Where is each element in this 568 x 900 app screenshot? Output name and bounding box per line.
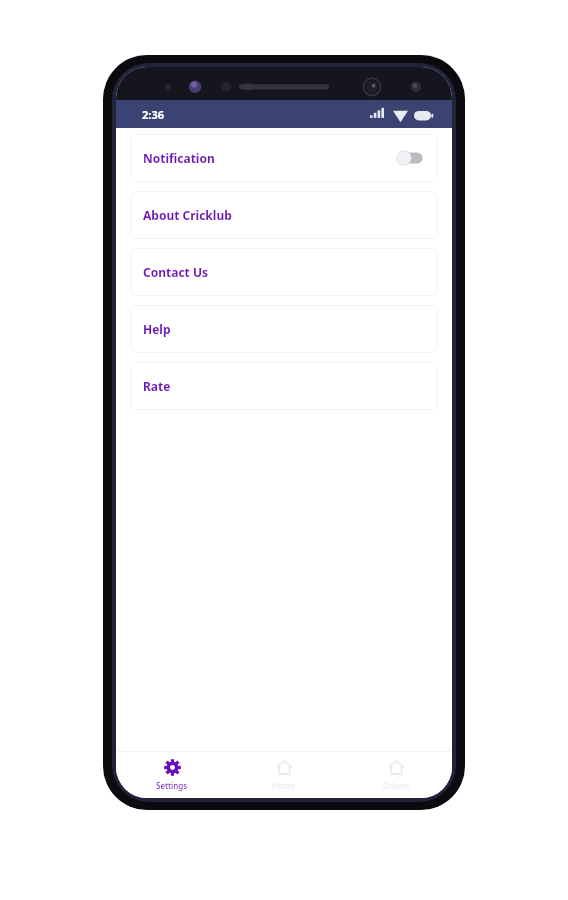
staticText: Home xyxy=(272,780,296,791)
button[interactable]: Settings xyxy=(116,752,228,798)
staticText: Rate xyxy=(143,378,171,394)
button[interactable]: Toggle notifications xyxy=(395,149,425,167)
staticText: Contact Us xyxy=(143,264,209,280)
staticText: Help xyxy=(143,321,171,337)
button[interactable]: Help xyxy=(130,305,438,353)
staticText: Settings xyxy=(156,780,188,791)
button[interactable]: Rate xyxy=(130,362,438,410)
button[interactable]: Others xyxy=(340,752,452,798)
staticText: 2:36 xyxy=(142,107,164,122)
staticText: About Cricklub xyxy=(143,207,232,223)
button[interactable]: About Cricklub xyxy=(130,191,438,239)
staticText: Notification xyxy=(143,150,215,166)
staticText: Others xyxy=(383,780,410,791)
button[interactable]: Contact Us xyxy=(130,248,438,296)
button[interactable]: Notification xyxy=(130,134,438,182)
